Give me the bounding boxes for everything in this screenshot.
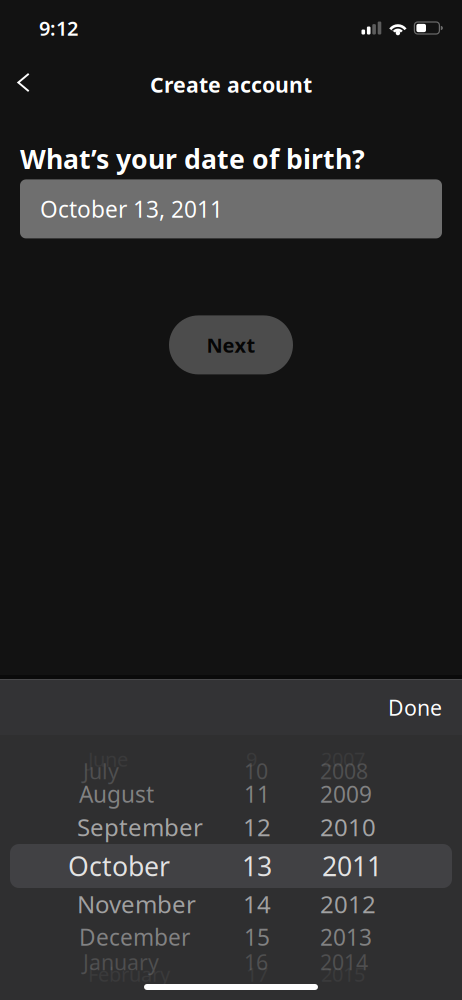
- button[interactable]: Done: [376, 683, 454, 732]
- staticText: 2012: [320, 888, 376, 920]
- staticText: June: [88, 746, 128, 772]
- staticText: 2010: [320, 811, 376, 843]
- staticText: 16: [244, 948, 268, 976]
- staticText: 10: [244, 757, 268, 785]
- staticText: November: [77, 888, 196, 920]
- staticText: 11: [244, 779, 270, 809]
- staticText: 2014: [320, 948, 368, 976]
- staticText: 2013: [320, 922, 372, 952]
- staticText: December: [79, 922, 190, 952]
- staticText: Create account: [150, 70, 312, 99]
- staticText: July: [83, 757, 119, 785]
- staticText: 9:12: [39, 15, 78, 41]
- staticText: February: [88, 961, 170, 987]
- staticText: September: [77, 811, 203, 843]
- staticText: August: [79, 779, 154, 809]
- staticText: 2008: [320, 757, 368, 785]
- staticText: What’s your date of birth?: [20, 141, 365, 176]
- staticText: 13: [242, 848, 272, 884]
- staticText: 9: [246, 746, 257, 772]
- button[interactable]: Back: [1, 60, 46, 108]
- staticText: 2015: [321, 961, 365, 987]
- staticText: 2007: [321, 746, 365, 772]
- staticText: 12: [243, 811, 271, 843]
- staticText: 2009: [320, 779, 372, 809]
- staticText: October 13, 2011: [40, 194, 223, 224]
- staticText: 14: [243, 888, 271, 920]
- staticText: 15: [244, 922, 270, 952]
- staticText: 2011: [322, 848, 382, 884]
- staticText: January: [83, 948, 159, 976]
- staticText: Done: [388, 693, 442, 722]
- button[interactable]: October 13, 2011: [20, 179, 442, 238]
- staticText: October: [68, 848, 170, 884]
- staticText: Next: [206, 332, 255, 358]
- staticText: 17: [246, 961, 268, 987]
- button[interactable]: Next: [169, 315, 293, 374]
